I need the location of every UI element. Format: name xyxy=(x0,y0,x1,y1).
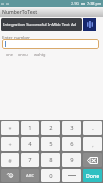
staticText: 7 xyxy=(28,156,32,164)
staticText: Integration Successful InMbb Text Ad xyxy=(3,22,77,28)
button[interactable]: 8 xyxy=(41,153,60,167)
button[interactable]: 4 xyxy=(21,137,39,151)
staticText: NumberToText xyxy=(2,9,38,16)
button[interactable]: Emoji xyxy=(1,169,19,182)
staticText: 2 xyxy=(49,124,53,132)
button[interactable]: * xyxy=(1,121,19,135)
button[interactable]: # xyxy=(1,153,19,167)
staticText: 4 xyxy=(28,140,32,148)
staticText: Done xyxy=(86,172,100,179)
button[interactable] xyxy=(2,39,99,49)
staticText: Enter number xyxy=(2,34,31,40)
staticText: * xyxy=(8,125,12,132)
staticText: 9 xyxy=(70,156,74,164)
button[interactable]: Integration Successful InMbb Text Ad xyxy=(1,18,82,31)
staticText: wahtg xyxy=(34,52,46,57)
staticText: 8 xyxy=(49,156,53,164)
staticText: - xyxy=(92,125,94,132)
button[interactable]: 5 xyxy=(41,137,60,151)
button[interactable]: Done xyxy=(83,169,102,182)
button[interactable]: 0 xyxy=(41,169,60,182)
button[interactable]: 1 xyxy=(21,121,39,135)
button[interactable]: - xyxy=(83,121,102,135)
staticText: 2.9G xyxy=(71,1,80,6)
staticText: one xyxy=(6,52,13,57)
button[interactable]: ABC xyxy=(21,169,39,182)
button[interactable]: Advertisement xyxy=(83,18,96,31)
button[interactable]: + xyxy=(1,137,19,151)
staticText: 1 xyxy=(28,124,32,132)
button[interactable]: 9 xyxy=(62,153,81,167)
staticText: 6 xyxy=(70,140,74,148)
button[interactable]: 3 xyxy=(62,121,81,135)
button[interactable]: Backspace xyxy=(83,153,102,167)
staticText: ABC xyxy=(26,173,35,179)
staticText: # xyxy=(8,157,12,164)
button[interactable]: 2 xyxy=(41,121,60,135)
staticText: 5 xyxy=(49,140,53,148)
button[interactable]: , xyxy=(83,137,102,151)
button[interactable]: 6 xyxy=(62,137,81,151)
staticText: , xyxy=(92,141,94,148)
staticText: onnu xyxy=(18,52,28,57)
button[interactable]: Space xyxy=(62,169,81,182)
button[interactable]: 7 xyxy=(21,153,39,167)
staticText: + xyxy=(8,141,12,148)
staticText: 7:38 pm xyxy=(87,1,102,6)
staticText: 3 xyxy=(70,124,74,132)
staticText: 0 xyxy=(49,172,53,180)
